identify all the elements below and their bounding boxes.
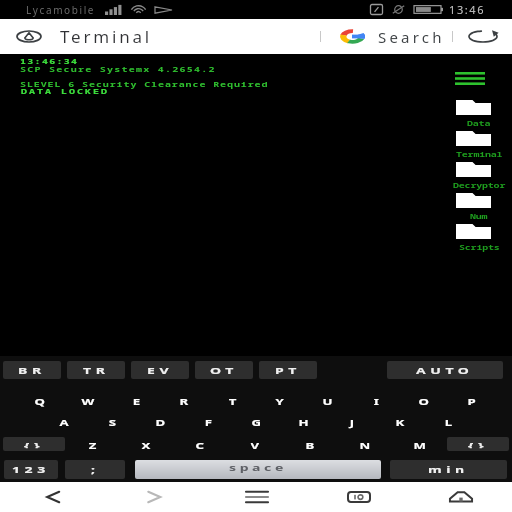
button[interactable]: I <box>352 393 400 409</box>
staticText: {} <box>24 440 45 448</box>
staticText: S <box>109 416 116 428</box>
staticText: Terminal <box>456 149 503 159</box>
button[interactable]: X <box>119 437 173 451</box>
button[interactable]: EV <box>131 361 189 379</box>
button[interactable]: Page info <box>0 19 57 54</box>
button[interactable]: T <box>208 393 256 409</box>
button[interactable]: M <box>392 437 447 451</box>
staticText: Decryptor <box>453 180 506 190</box>
button[interactable]: Y <box>256 393 304 409</box>
staticText: A <box>59 416 69 428</box>
staticText: Num <box>470 211 488 221</box>
button[interactable]: F <box>184 414 232 430</box>
staticText: BR <box>18 364 46 376</box>
button[interactable]: J <box>328 414 376 430</box>
button[interactable]: Data <box>444 100 512 130</box>
staticText: J <box>350 416 354 428</box>
staticText: ; <box>91 464 100 475</box>
button[interactable]: Menu <box>206 482 308 512</box>
button[interactable]: Back <box>0 482 103 512</box>
staticText: M <box>413 438 427 449</box>
button[interactable]: B <box>282 437 337 451</box>
staticText: T <box>229 395 236 407</box>
staticText: N <box>359 438 370 449</box>
button[interactable]: AUTO <box>387 361 503 379</box>
staticText: Z <box>89 438 96 449</box>
button[interactable]: U <box>304 393 352 409</box>
staticText: space <box>229 462 287 473</box>
staticText: F <box>205 416 212 428</box>
button[interactable]: H <box>280 414 328 430</box>
staticText: O <box>418 395 429 407</box>
button[interactable]: O <box>400 393 448 409</box>
button[interactable]: 123 <box>4 460 58 479</box>
button[interactable]: Menu <box>450 68 490 88</box>
button[interactable]: L <box>424 414 472 430</box>
button[interactable]: min <box>390 460 507 479</box>
staticText: C <box>196 438 204 449</box>
staticText: Data <box>467 118 491 128</box>
staticText: P <box>468 395 476 407</box>
button[interactable]: Forward <box>103 482 206 512</box>
button[interactable]: ; <box>65 460 125 479</box>
button[interactable]: C <box>173 437 227 451</box>
staticText: TR <box>83 364 110 376</box>
button[interactable]: G <box>232 414 280 430</box>
button[interactable]: D <box>136 414 184 430</box>
staticText: SLEVEL 6 Security Clearance Required <box>20 79 269 89</box>
staticText: U <box>322 395 333 407</box>
button[interactable]: W <box>64 393 112 409</box>
staticText: Lycamobile <box>26 3 96 17</box>
button[interactable]: E <box>112 393 160 409</box>
button[interactable]: Terminal <box>444 131 512 161</box>
button[interactable]: Tabs: 10 <box>308 482 410 512</box>
button[interactable]: Q <box>16 393 64 409</box>
button[interactable]: {} <box>447 437 509 451</box>
staticText: G <box>252 416 261 428</box>
staticText: B <box>306 438 314 449</box>
button[interactable]: K <box>376 414 424 430</box>
button[interactable]: space <box>135 460 381 479</box>
button[interactable]: OT <box>195 361 253 379</box>
staticText: X <box>142 438 151 449</box>
staticText: R <box>180 395 188 407</box>
staticText: 13:46:34 <box>20 56 79 66</box>
staticText: {} <box>468 440 489 448</box>
staticText: min <box>428 464 469 475</box>
staticText: L <box>445 416 452 428</box>
staticText: DATA LOCKED <box>20 86 108 96</box>
button[interactable]: Scripts <box>444 224 512 254</box>
button[interactable]: Reload <box>453 19 512 54</box>
staticText: Q <box>34 395 45 407</box>
button[interactable]: N <box>337 437 392 451</box>
staticText: 123 <box>12 464 50 475</box>
staticText: SCP Secure Systemx 4.2654.2 <box>20 64 216 74</box>
button[interactable]: Decryptor <box>444 162 512 192</box>
button[interactable]: R <box>160 393 208 409</box>
staticText: D <box>156 416 165 428</box>
button[interactable]: Z <box>65 437 119 451</box>
staticText: 13:46 <box>449 2 486 17</box>
button[interactable]: PT <box>259 361 317 379</box>
button[interactable]: V <box>227 437 282 451</box>
button[interactable]: {} <box>3 437 65 451</box>
staticText: V <box>251 438 259 449</box>
staticText: H <box>298 416 309 428</box>
button[interactable]: Terminal <box>60 25 152 48</box>
staticText: Y <box>276 395 284 407</box>
staticText: W <box>81 395 95 407</box>
button[interactable]: TR <box>67 361 125 379</box>
staticText: Scripts <box>459 242 500 252</box>
button[interactable]: Search <box>321 19 452 54</box>
button[interactable]: A <box>40 414 88 430</box>
button[interactable]: BR <box>3 361 61 379</box>
button[interactable]: Home <box>410 482 512 512</box>
staticText: K <box>396 416 404 428</box>
button[interactable]: S <box>88 414 136 430</box>
button[interactable]: P <box>448 393 496 409</box>
staticText: AUTO <box>416 364 474 376</box>
staticText: EV <box>147 364 174 376</box>
staticText: PT <box>275 364 301 376</box>
button[interactable]: Num <box>444 193 512 223</box>
staticText: I <box>374 395 379 407</box>
